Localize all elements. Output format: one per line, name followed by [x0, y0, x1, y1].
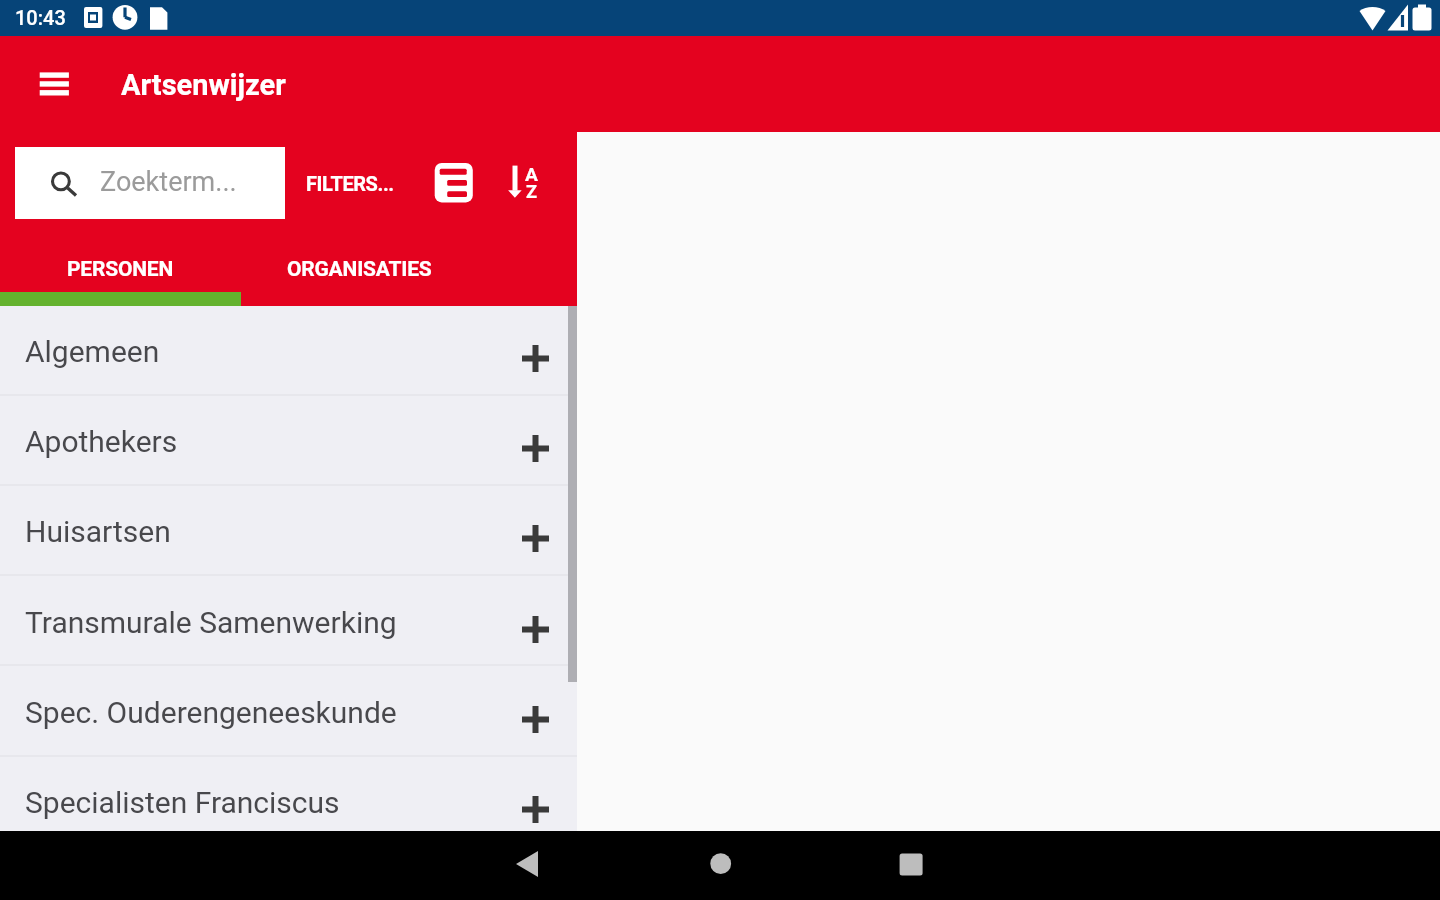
staticText: Spec. Ouderengeneeskunde	[25, 695, 397, 730]
staticText: A	[525, 163, 538, 186]
staticText: Huisartsen	[25, 514, 171, 549]
button[interactable]: Expand Huisartsen	[508, 511, 563, 566]
button[interactable]: PERSONEN	[0, 253, 241, 306]
button[interactable]: Expand Apothekers	[508, 421, 563, 476]
button[interactable]: Sort alphabetically	[500, 155, 560, 215]
button[interactable]: Expand Transmurale Samenwerking	[508, 602, 563, 657]
button[interactable]: Algemeen	[0, 306, 577, 396]
button[interactable]: Back	[497, 834, 557, 894]
button[interactable]: FILTERS...	[299, 147, 402, 219]
button[interactable]: Zoekterm...	[15, 147, 285, 219]
staticText: Specialisten Franciscus	[25, 785, 340, 820]
button[interactable]: Specialisten Franciscus	[0, 757, 577, 847]
staticText: Transmurale Samenwerking	[25, 605, 397, 640]
button[interactable]: Toggle compact view	[424, 155, 484, 215]
button[interactable]: Recent apps	[883, 834, 943, 894]
staticText: Artsenwijzer	[121, 68, 286, 102]
staticText: 10:43	[15, 6, 66, 29]
button[interactable]: Expand Specialisten Franciscus	[508, 782, 563, 837]
staticText: ORGANISATIES	[287, 257, 432, 282]
staticText: Algemeen	[25, 334, 160, 369]
button[interactable]: Open navigation menu	[26, 44, 82, 100]
button[interactable]: Expand Spec. Ouderengeneeskunde	[508, 692, 563, 747]
button[interactable]: Transmurale Samenwerking	[0, 577, 577, 667]
button[interactable]: ORGANISATIES	[241, 253, 482, 306]
staticText: Zoekterm...	[100, 166, 237, 198]
button[interactable]: Home	[691, 834, 751, 894]
button[interactable]: Huisartsen	[0, 486, 577, 576]
button[interactable]: Apothekers	[0, 396, 577, 486]
button[interactable]: Expand Algemeen	[508, 331, 563, 386]
button[interactable]: Spec. Ouderengeneeskunde	[0, 667, 577, 757]
staticText: Apothekers	[25, 424, 178, 459]
staticText: Z	[526, 181, 538, 202]
staticText: FILTERS...	[306, 172, 394, 195]
staticText: PERSONEN	[67, 257, 174, 282]
